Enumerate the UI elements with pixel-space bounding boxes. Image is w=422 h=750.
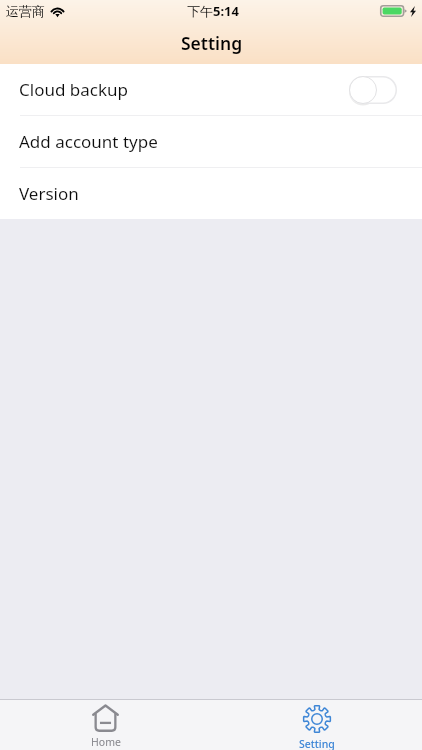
staticText: 下午 [187,3,213,19]
staticText: Home [91,735,121,749]
staticText: Setting [181,31,243,55]
button[interactable] [349,76,397,104]
button[interactable]: Setting [211,699,422,750]
button[interactable]: Cloud backup [0,64,422,115]
staticText: Version [19,182,79,205]
staticText: Setting [299,737,335,750]
button[interactable]: Add account type [0,116,422,167]
staticText: Add account type [19,130,158,153]
staticText: 5:14 [213,2,239,20]
button[interactable]: Version [0,168,422,219]
staticText: 运营商 [6,3,45,19]
other: Setting [302,704,332,734]
staticText: Cloud backup [19,78,128,101]
button[interactable]: Home [0,699,211,750]
other: Home [92,704,119,732]
